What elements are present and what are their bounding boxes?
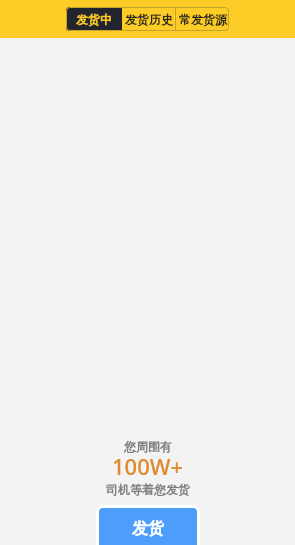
staticText: 常发货源 [179,12,227,27]
button[interactable]: 常发货源 [176,7,229,31]
staticText: 您周围有 [124,439,172,454]
button[interactable]: 发货中 [66,7,122,31]
button[interactable]: 发货历史 [122,7,175,31]
staticText: 发货中 [76,12,112,27]
button[interactable]: 发货 [99,508,197,545]
staticText: 司机等着您发货 [106,482,190,497]
staticText: 发货历史 [125,12,173,27]
staticText: 100W+ [112,451,184,481]
staticText: 发货 [132,519,164,539]
